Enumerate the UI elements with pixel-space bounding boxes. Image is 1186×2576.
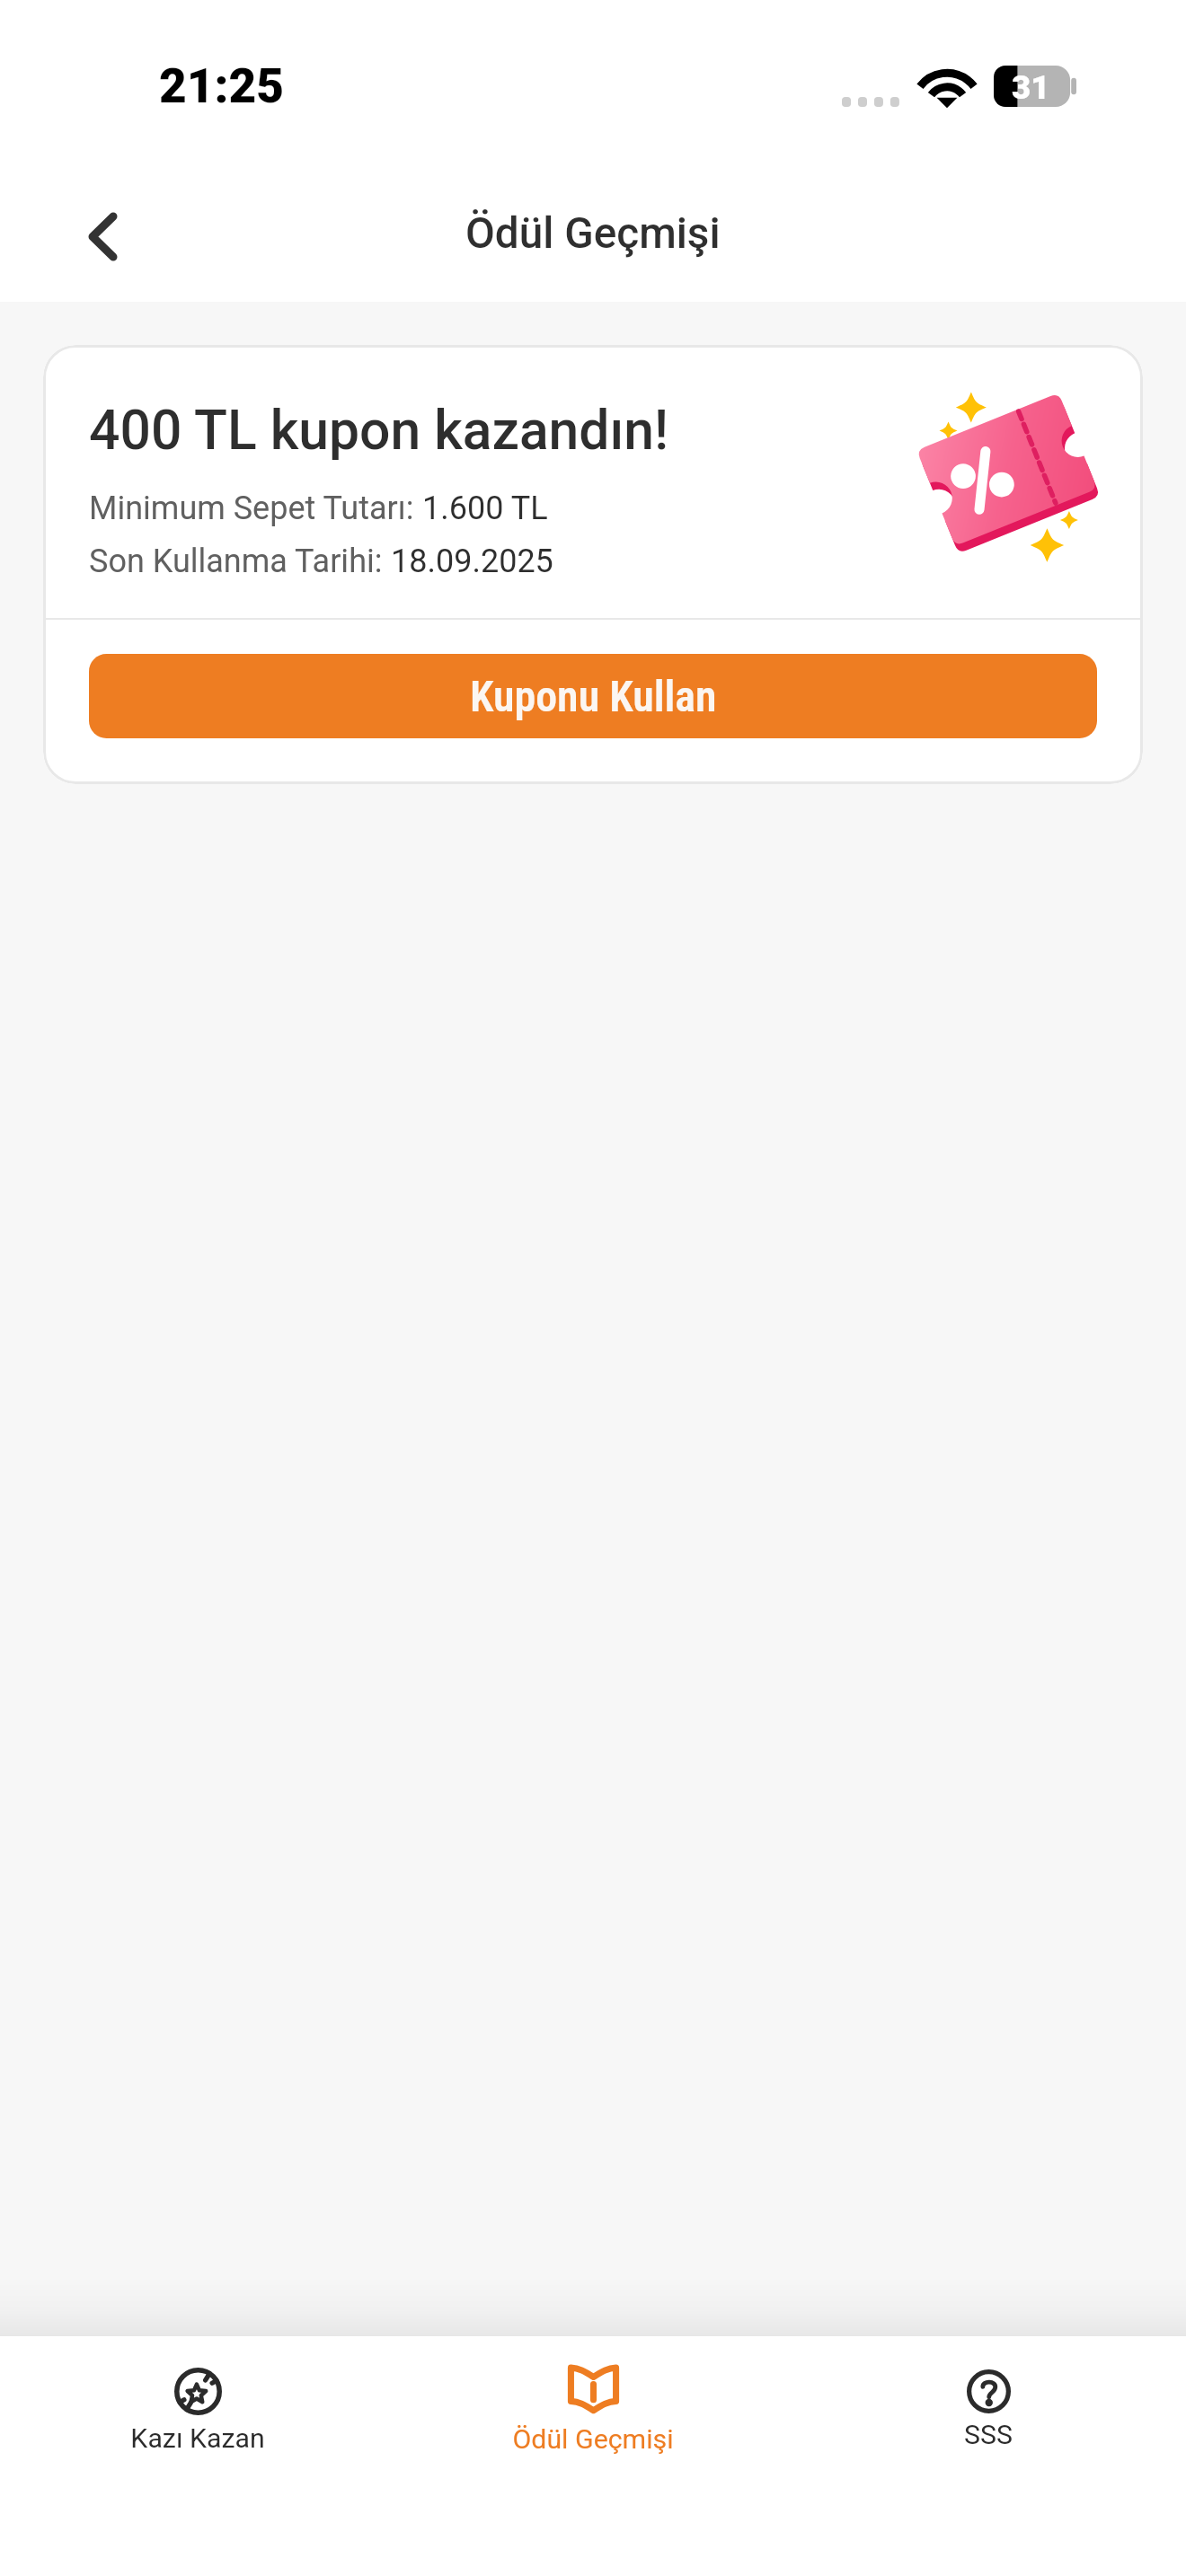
button[interactable]: Ödül Geçmişi — [395, 2336, 791, 2456]
button[interactable]: Back — [43, 177, 162, 296]
staticText: Kuponu Kullan — [470, 671, 717, 721]
staticText: 21:25 — [159, 58, 285, 114]
staticText: SSS — [964, 2419, 1013, 2451]
staticText: Ödül Geçmişi — [465, 208, 721, 259]
staticText: Son Kullanma Tarihi: — [89, 543, 391, 580]
staticText: 31 — [1012, 68, 1050, 107]
staticText: 18.09.2025 — [391, 543, 553, 580]
button[interactable]: Kuponu Kullan — [89, 654, 1097, 738]
staticText: Kazı Kazan — [130, 2422, 265, 2455]
button[interactable]: SSS — [791, 2336, 1186, 2451]
button[interactable]: Kazı Kazan — [0, 2336, 395, 2455]
staticText: 1.600 TL — [422, 490, 548, 527]
staticText: Ödül Geçmişi — [512, 2423, 674, 2456]
staticText: Minimum Sepet Tutarı: — [89, 490, 422, 527]
staticText: 400 TL kupon kazandın! — [89, 399, 669, 463]
